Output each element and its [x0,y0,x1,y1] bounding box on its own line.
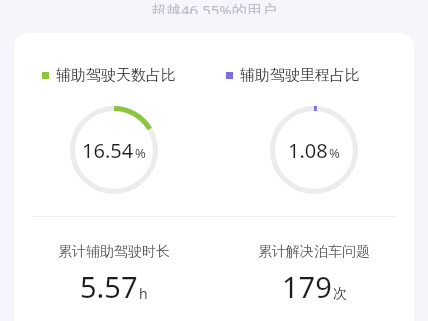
staticText: 次 [333,285,347,303]
staticText: 累计辅助驾驶时长 [58,243,170,261]
staticText: 辅助驾驶天数占比 [56,66,176,85]
button[interactable]: 辅助驾驶天数占比 [42,66,176,85]
staticText: 1.08 [288,137,328,164]
button[interactable]: 累计解决泊车问题 [258,243,370,306]
button[interactable]: 辅助驾驶里程占比 [226,66,360,85]
staticText: h [139,284,148,303]
staticText: % [329,144,340,162]
staticText: 辅助驾驶里程占比 [240,66,360,85]
staticText: 累计解决泊车问题 [258,243,370,261]
staticText: 179 [282,267,332,306]
button[interactable]: 累计辅助驾驶时长 [58,243,170,306]
staticText: % [135,144,146,162]
staticText: 16.54 [82,137,134,164]
staticText: 5.57 [80,267,138,306]
staticText: 超越46.55%的用户 [151,0,277,14]
